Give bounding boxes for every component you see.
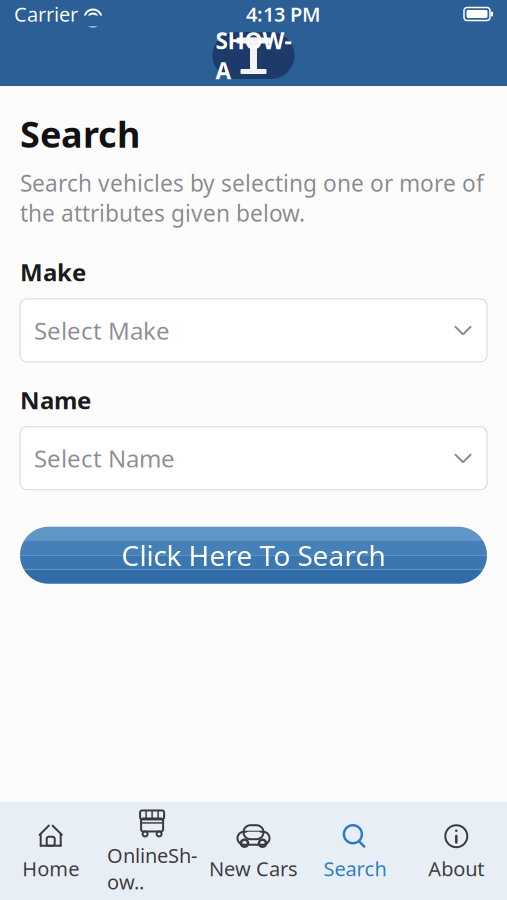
staticText: Select Make — [34, 314, 170, 346]
staticText: Make — [20, 256, 86, 288]
button[interactable]: Search — [304, 812, 406, 890]
button[interactable]: Select Name — [20, 427, 487, 490]
staticText: Search vehicles by selecting one or more… — [20, 168, 484, 228]
staticText: SHOWA — [215, 25, 291, 86]
button[interactable]: New Cars — [203, 812, 304, 890]
staticText: Select Name — [34, 442, 175, 474]
button[interactable]: Home — [0, 812, 101, 890]
staticText: Name — [20, 384, 91, 416]
staticText: Search — [20, 110, 140, 158]
staticText: New Cars — [209, 855, 298, 882]
staticText: Carrier — [14, 1, 78, 27]
staticText: About — [428, 855, 484, 882]
staticText: 4:13 PM — [246, 1, 321, 27]
button[interactable]: Select Make — [20, 299, 487, 362]
staticText: OnlineShow.. — [107, 842, 197, 895]
staticText: Home — [22, 855, 79, 882]
button[interactable]: About — [406, 812, 507, 890]
staticText: Click Here To Search — [121, 537, 385, 574]
button[interactable]: Click Here To Search — [20, 527, 487, 584]
button[interactable]: OnlineShow.. — [101, 799, 203, 900]
staticText: Search — [323, 855, 386, 882]
